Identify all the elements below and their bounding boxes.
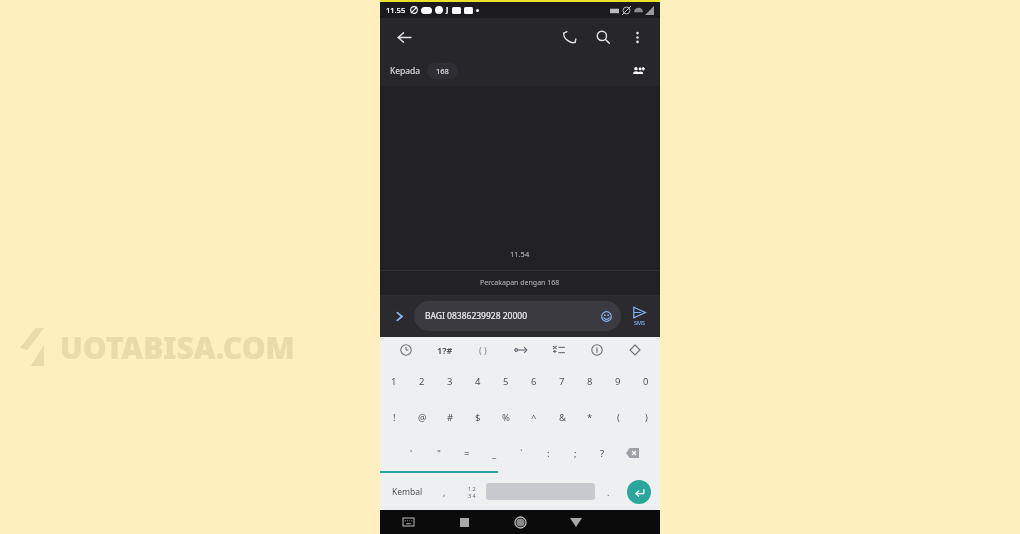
button[interactable]: ? <box>589 435 616 471</box>
button[interactable]: 3 <box>436 363 464 399</box>
button[interactable]: Call <box>556 24 582 50</box>
button[interactable]: 2 <box>408 363 436 399</box>
button[interactable]: 6 <box>520 363 548 399</box>
staticText: : <box>547 447 550 460</box>
staticText: _ <box>492 447 497 460</box>
button[interactable]: 4 <box>464 363 492 399</box>
button[interactable]: Back <box>390 24 416 50</box>
staticText: 2 <box>419 375 425 388</box>
staticText: ( ) <box>479 344 487 356</box>
button[interactable]: BAGI 08386239928 20000 <box>414 301 621 331</box>
button[interactable]: 1?# <box>425 337 464 363</box>
staticText: SMS <box>634 319 646 326</box>
staticText: & <box>559 411 566 424</box>
staticText: ^ <box>531 411 537 424</box>
staticText: = <box>464 447 470 460</box>
staticText: 5 <box>503 375 509 388</box>
button[interactable]: : <box>535 435 562 471</box>
button[interactable]: ( ) <box>464 337 502 363</box>
button[interactable]: Kembal <box>384 473 431 510</box>
button[interactable]: ` <box>508 435 535 471</box>
staticText: 0 <box>643 375 649 388</box>
staticText: ' <box>410 447 413 460</box>
staticText: % <box>502 411 510 424</box>
button[interactable]: More options <box>624 24 650 50</box>
button[interactable]: ) <box>632 399 660 435</box>
staticText: J <box>446 5 449 15</box>
staticText: Kepada <box>390 65 421 77</box>
button[interactable]: _ <box>481 435 508 471</box>
button[interactable]: ' <box>397 435 425 471</box>
button[interactable]: 8 <box>576 363 604 399</box>
staticText: 7 <box>559 375 565 388</box>
staticText: Percakapan dengan 168 <box>480 278 560 288</box>
button[interactable]: = <box>453 435 481 471</box>
staticText: " <box>437 447 441 460</box>
button[interactable]: Expand <box>386 303 412 329</box>
button[interactable]: # <box>436 399 464 435</box>
button[interactable]: . <box>595 473 621 510</box>
button[interactable] <box>386 337 425 363</box>
button[interactable]: Numbers <box>457 473 486 510</box>
button[interactable]: Add people <box>626 59 650 83</box>
staticText: 4 <box>475 375 481 388</box>
button[interactable]: Home <box>492 510 548 534</box>
button[interactable]: Send SMS <box>624 301 654 331</box>
staticText: Kembal <box>392 486 423 498</box>
staticText: 3 <box>447 375 453 388</box>
staticText: * <box>587 411 593 424</box>
button[interactable] <box>502 337 540 363</box>
button[interactable]: " <box>425 435 453 471</box>
staticText: 1 <box>391 375 397 388</box>
staticText: ` <box>520 447 523 460</box>
staticText: 168 <box>436 66 449 76</box>
staticText: ( <box>617 411 620 424</box>
button[interactable]: & <box>548 399 576 435</box>
staticText: ) <box>645 411 648 424</box>
staticText: ; <box>574 447 577 460</box>
staticText: . <box>607 486 610 498</box>
staticText: BAGI 08386239928 20000 <box>425 310 528 322</box>
staticText: 8 <box>587 375 593 388</box>
button[interactable]: * <box>576 399 604 435</box>
button[interactable]: @ <box>408 399 436 435</box>
button[interactable]: 5 <box>492 363 520 399</box>
button[interactable]: % <box>492 399 520 435</box>
button[interactable]: 0 <box>632 363 660 399</box>
button[interactable]: Recents <box>436 510 492 534</box>
staticText: 9 <box>615 375 621 388</box>
staticText: 3 4 <box>468 492 476 499</box>
button[interactable] <box>540 337 578 363</box>
staticText: 6 <box>531 375 537 388</box>
button[interactable]: 9 <box>604 363 632 399</box>
staticText: $ <box>475 411 481 424</box>
staticText: ? <box>600 447 605 460</box>
staticText: @ <box>418 411 427 424</box>
button[interactable]: Keyboard <box>380 510 436 534</box>
staticText: 1?# <box>437 344 453 356</box>
button[interactable]: Search <box>590 24 616 50</box>
button[interactable]: ! <box>380 399 408 435</box>
button[interactable] <box>616 337 654 363</box>
button[interactable]: Emoji <box>597 307 615 325</box>
button[interactable]: Enter <box>627 480 651 504</box>
button[interactable]: Backspace <box>616 435 649 471</box>
button[interactable]: 1 <box>380 363 408 399</box>
staticText: ! <box>393 411 396 424</box>
button[interactable]: ( <box>604 399 632 435</box>
button[interactable]: 7 <box>548 363 576 399</box>
button[interactable]: , <box>431 473 457 510</box>
button[interactable]: ^ <box>520 399 548 435</box>
button[interactable]: $ <box>464 399 492 435</box>
staticText: , <box>443 486 446 498</box>
button[interactable]: ; <box>562 435 589 471</box>
staticText: UOTABISA.COM <box>60 327 295 368</box>
staticText: 1 2 <box>468 485 476 492</box>
button[interactable]: Back <box>548 510 604 534</box>
button[interactable] <box>578 337 616 363</box>
staticText: 11.54 <box>510 249 530 259</box>
staticText: 11.55 <box>386 5 406 15</box>
button[interactable]: 168 <box>436 66 449 76</box>
staticText: # <box>447 411 454 424</box>
